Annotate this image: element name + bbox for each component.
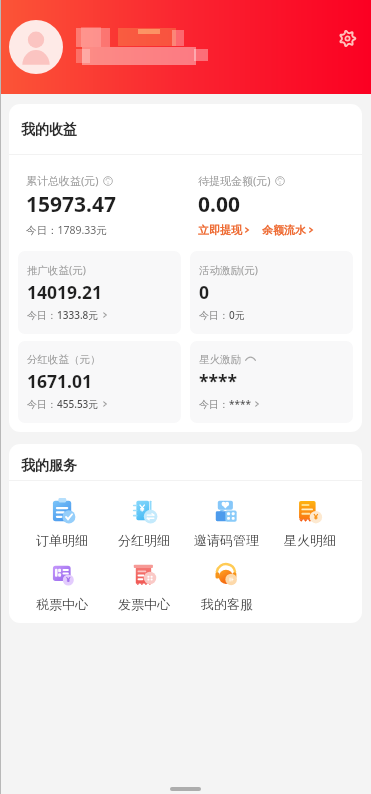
button[interactable]: 分红明细	[103, 496, 185, 548]
button[interactable]: 税票中心	[21, 560, 103, 612]
staticText: 邀请码管理	[194, 532, 259, 548]
staticText: 今日：	[199, 309, 229, 322]
button[interactable]: Settings	[332, 23, 362, 53]
button[interactable]: Profile avatar	[9, 20, 63, 74]
staticText: 我的收益	[21, 121, 77, 139]
staticText: 余额流水	[262, 223, 306, 237]
staticText: 0	[199, 280, 210, 304]
staticText: 0.00	[198, 190, 240, 219]
staticText: 累计总收益(元)	[26, 173, 99, 188]
staticText: 14019.21	[27, 280, 102, 304]
staticText: 今日：1789.33元	[26, 223, 107, 237]
button[interactable]: 我的客服	[185, 560, 268, 612]
staticText: 1671.01	[27, 369, 92, 393]
button[interactable]: 活动激励(元)	[190, 251, 353, 334]
button[interactable]: 星火激励	[190, 341, 353, 423]
button[interactable]: 订单明细	[21, 496, 103, 548]
staticText: 0元	[229, 308, 245, 322]
staticText: 发票中心	[118, 596, 170, 612]
staticText: 今日：	[27, 309, 57, 322]
staticText: 455.53元	[57, 397, 99, 411]
staticText: 星火激励	[199, 353, 241, 366]
staticText: 立即提现	[198, 223, 242, 237]
button[interactable]: 立即提现	[198, 223, 251, 237]
staticText: 1333.8元	[57, 308, 99, 322]
staticText: 活动激励(元)	[199, 263, 258, 277]
button[interactable]: 发票中心	[103, 560, 185, 612]
staticText: 星火明细	[284, 532, 336, 548]
staticText: 分红明细	[118, 532, 170, 548]
staticText: 我的客服	[201, 596, 253, 612]
staticText: 分红收益（元）	[27, 353, 101, 366]
staticText: ****	[199, 369, 237, 393]
button[interactable]: 星火明细	[268, 496, 351, 548]
staticText: 15973.47	[26, 190, 116, 219]
button[interactable]: 邀请码管理	[185, 496, 268, 548]
button[interactable]: 推广收益(元)	[18, 251, 181, 334]
staticText: 待提现金额(元)	[198, 173, 271, 188]
staticText: 今日：	[27, 398, 57, 411]
button[interactable]: 余额流水	[262, 223, 315, 237]
staticText: 税票中心	[36, 596, 88, 612]
staticText: 推广收益(元)	[27, 263, 86, 277]
staticText: 订单明细	[36, 532, 88, 548]
staticText: ****	[229, 397, 251, 411]
button[interactable]: 分红收益（元）	[18, 341, 181, 423]
staticText: 我的服务	[21, 457, 77, 475]
staticText: 今日：	[199, 398, 229, 411]
